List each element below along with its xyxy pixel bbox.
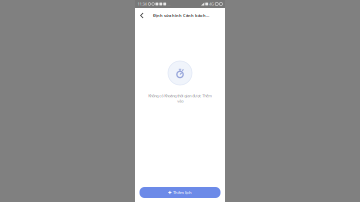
button[interactable]: Thêm lịch: [139, 187, 220, 198]
staticText: Định sửa hình Cảnh báo hàng Ả…: [153, 13, 209, 18]
staticText: Không có Khoảng thời gian được Thêm vào: [148, 93, 212, 104]
staticText: 4G: [209, 1, 214, 7]
staticText: 11:34: [137, 1, 146, 7]
button[interactable]: Back: [140, 8, 152, 23]
staticText: Thêm lịch: [173, 190, 192, 195]
